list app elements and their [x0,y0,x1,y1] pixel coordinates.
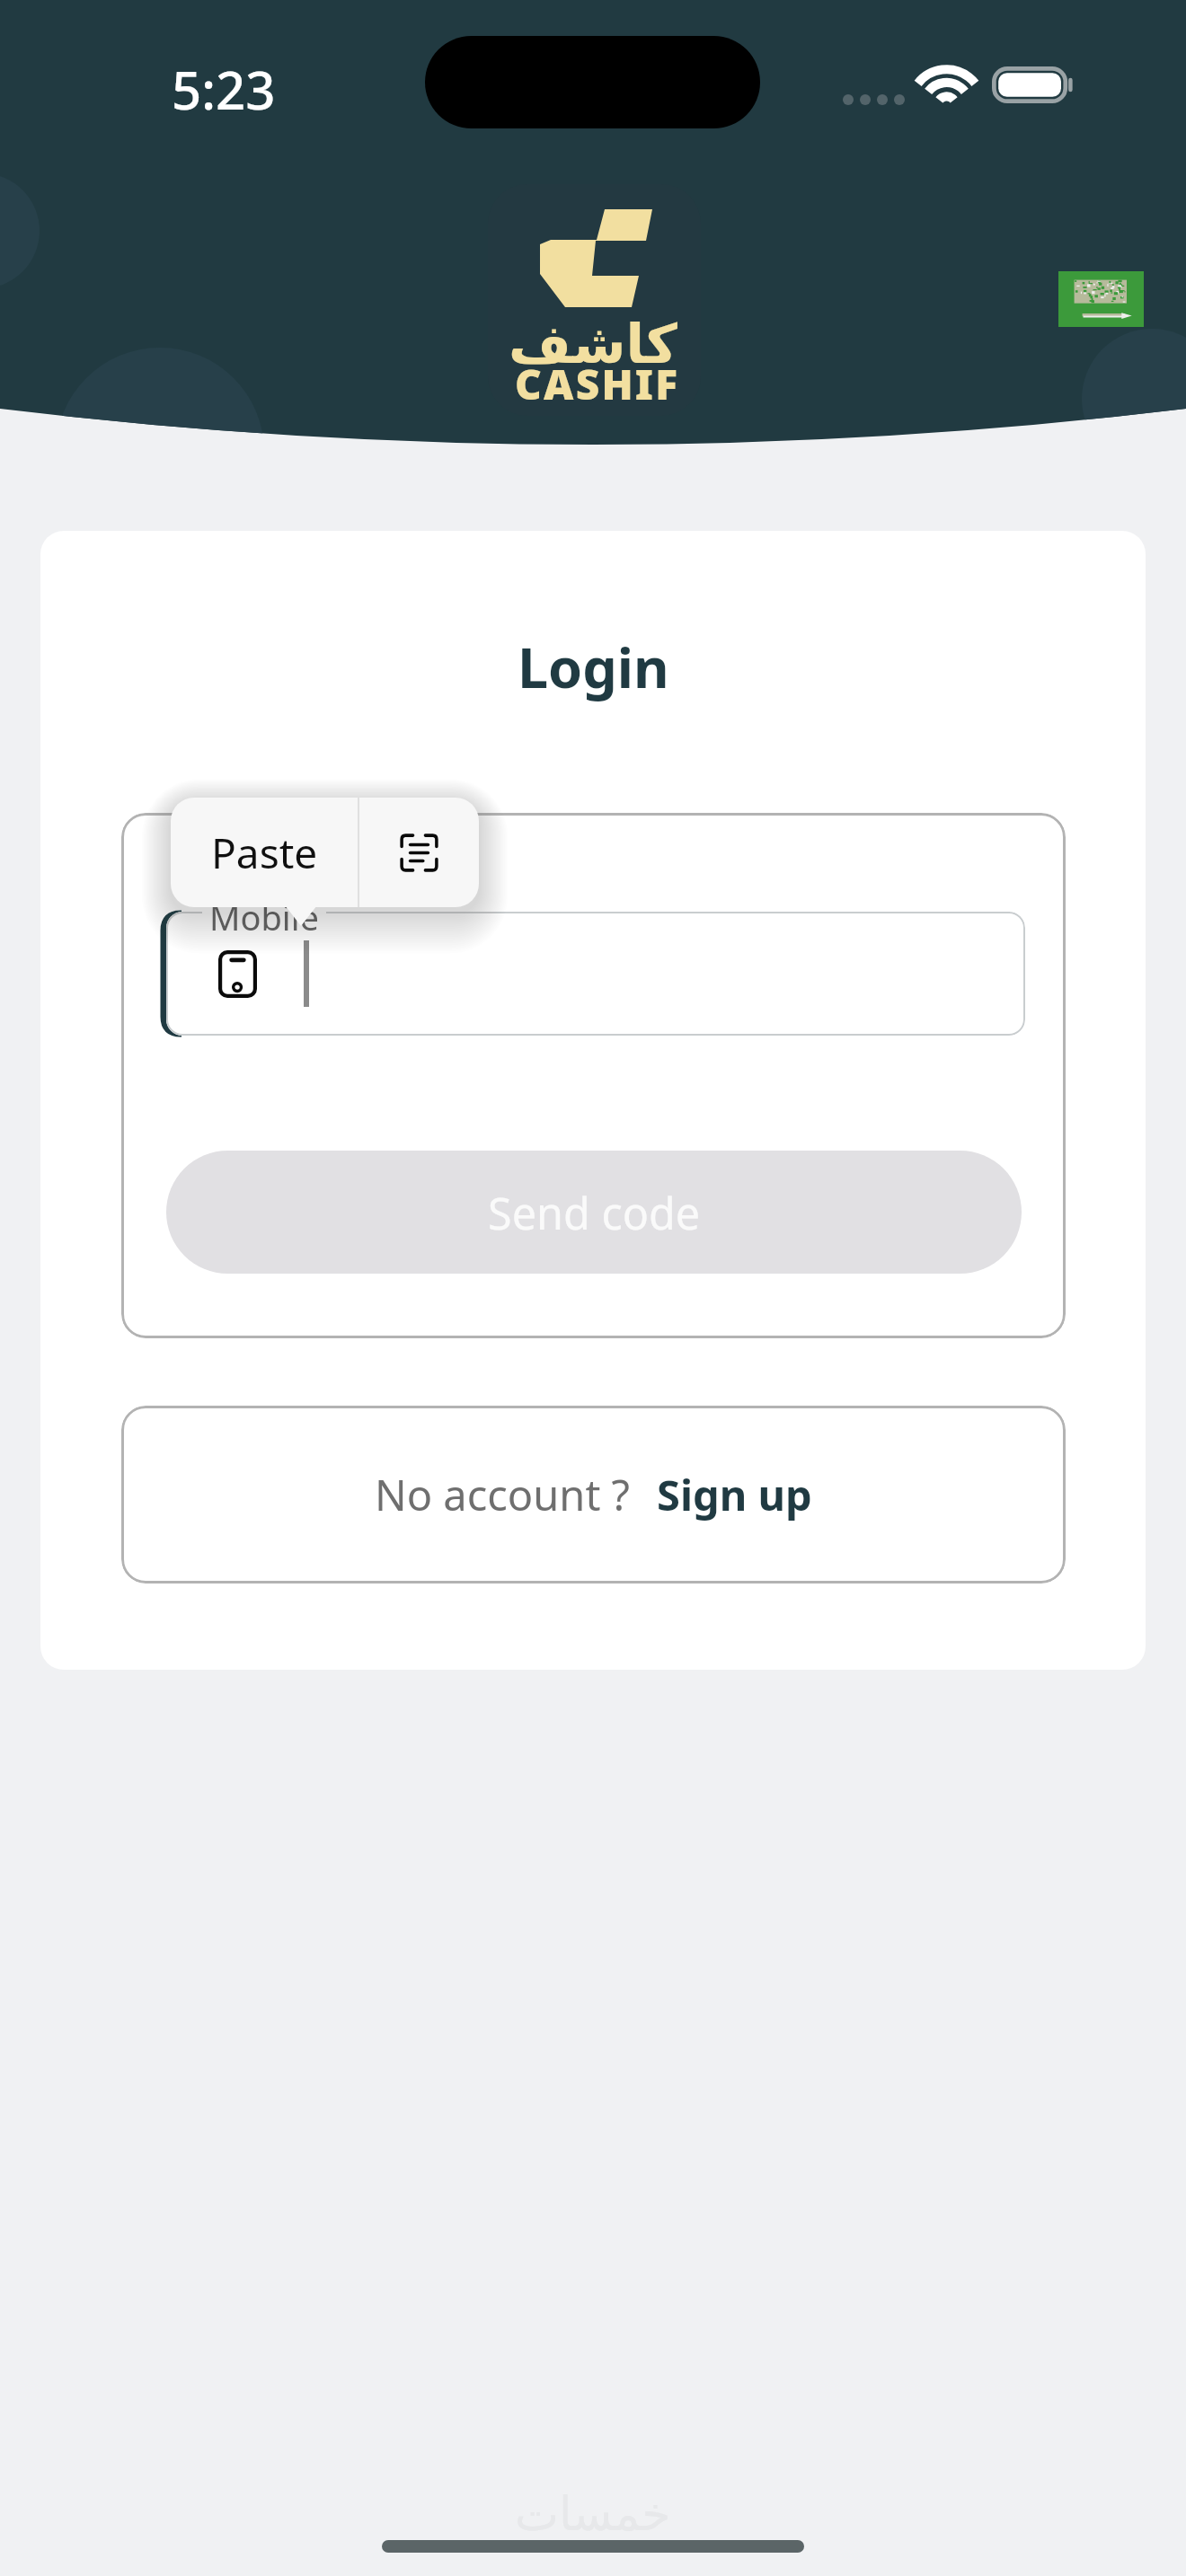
staticText: CASHIF [515,356,680,412]
button[interactable]: Scan text [359,798,479,907]
staticText: Paste [211,825,318,881]
staticText: Send code [488,1183,701,1242]
staticText: Mobile [209,894,319,940]
button[interactable]: Change language [1058,271,1144,327]
button[interactable]: Send code [166,1151,1022,1274]
staticText: Login [518,630,669,704]
button[interactable]: Mobile number field [166,912,1025,1036]
button[interactable]: No account ? [121,1406,1066,1584]
staticText: خمسات [515,2487,671,2542]
staticText: كاشف [509,313,677,375]
staticText: No account ? [375,1466,630,1523]
staticText: Sign up [657,1466,812,1523]
staticText: 5:23 [172,54,276,125]
button[interactable]: Paste [171,798,358,907]
